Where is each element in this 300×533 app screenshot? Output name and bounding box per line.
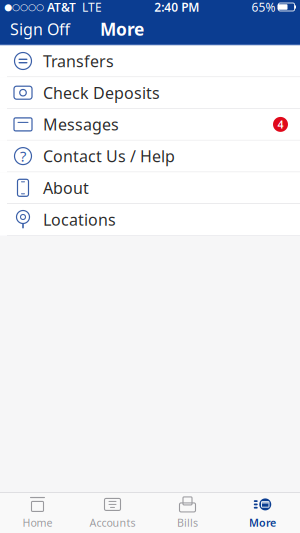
staticText: LTE: [76, 0, 102, 15]
button[interactable]: Bills: [150, 493, 225, 533]
button[interactable]: More: [225, 493, 300, 533]
button[interactable]: Transfers: [0, 45, 300, 77]
staticText: About: [43, 177, 89, 198]
button[interactable]: Home: [0, 493, 75, 533]
staticText: ?: [20, 146, 26, 166]
staticText: Sign Off: [10, 18, 70, 40]
staticText: 65%: [251, 0, 275, 15]
button[interactable]: About: [0, 172, 300, 204]
staticText: Bills: [177, 515, 198, 530]
staticText: Accounts: [89, 515, 135, 530]
staticText: AT&T: [44, 0, 76, 15]
staticText: Messages: [43, 114, 119, 135]
staticText: ●○○○○: [4, 2, 44, 12]
button[interactable]: Messages: [0, 109, 300, 141]
button[interactable]: Accounts: [75, 493, 150, 533]
staticText: 2:40 PM: [154, 0, 199, 15]
button[interactable]: ?: [0, 141, 300, 172]
staticText: Home: [22, 515, 52, 530]
staticText: More: [100, 17, 144, 40]
button[interactable]: Check Deposits: [0, 77, 300, 109]
staticText: More: [249, 515, 276, 530]
button[interactable]: Locations: [0, 204, 300, 236]
staticText: 4: [277, 117, 283, 131]
staticText: Check Deposits: [43, 82, 160, 103]
staticText: Locations: [43, 209, 116, 230]
button[interactable]: Sign Off: [0, 11, 70, 47]
staticText: Contact Us / Help: [43, 145, 175, 167]
staticText: Transfers: [43, 50, 114, 72]
